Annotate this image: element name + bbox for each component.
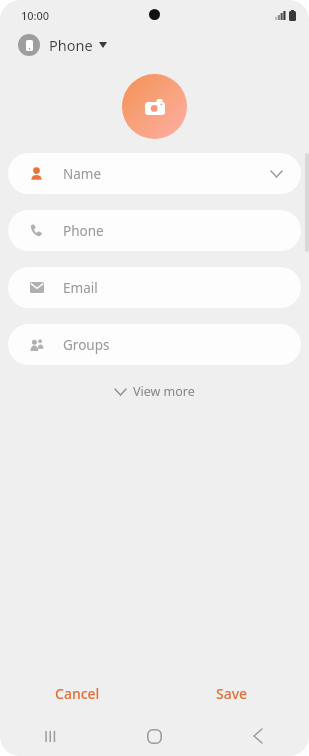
button[interactable]: Cancel xyxy=(0,670,154,716)
staticText: Phone xyxy=(63,222,104,240)
button[interactable]: Email xyxy=(8,267,301,308)
button[interactable]: View more xyxy=(105,378,205,405)
staticText: View more xyxy=(133,383,195,400)
button[interactable]: Phone xyxy=(14,30,111,60)
staticText: Groups xyxy=(63,336,110,354)
button[interactable]: Recent apps xyxy=(0,716,103,756)
staticText: Cancel xyxy=(55,684,100,703)
button[interactable]: Groups xyxy=(8,324,301,365)
staticText: Name xyxy=(63,165,102,183)
staticText: Email xyxy=(63,279,98,297)
staticText: Phone xyxy=(49,35,93,55)
staticText: Save xyxy=(216,684,248,703)
button[interactable]: Name xyxy=(8,153,301,194)
staticText: 10:00 xyxy=(21,8,50,23)
button[interactable]: Back xyxy=(206,716,309,756)
button[interactable]: Home xyxy=(103,716,206,756)
button[interactable]: Add contact photo xyxy=(122,74,187,139)
button[interactable]: Save xyxy=(154,670,309,716)
button[interactable]: Phone xyxy=(8,210,301,251)
